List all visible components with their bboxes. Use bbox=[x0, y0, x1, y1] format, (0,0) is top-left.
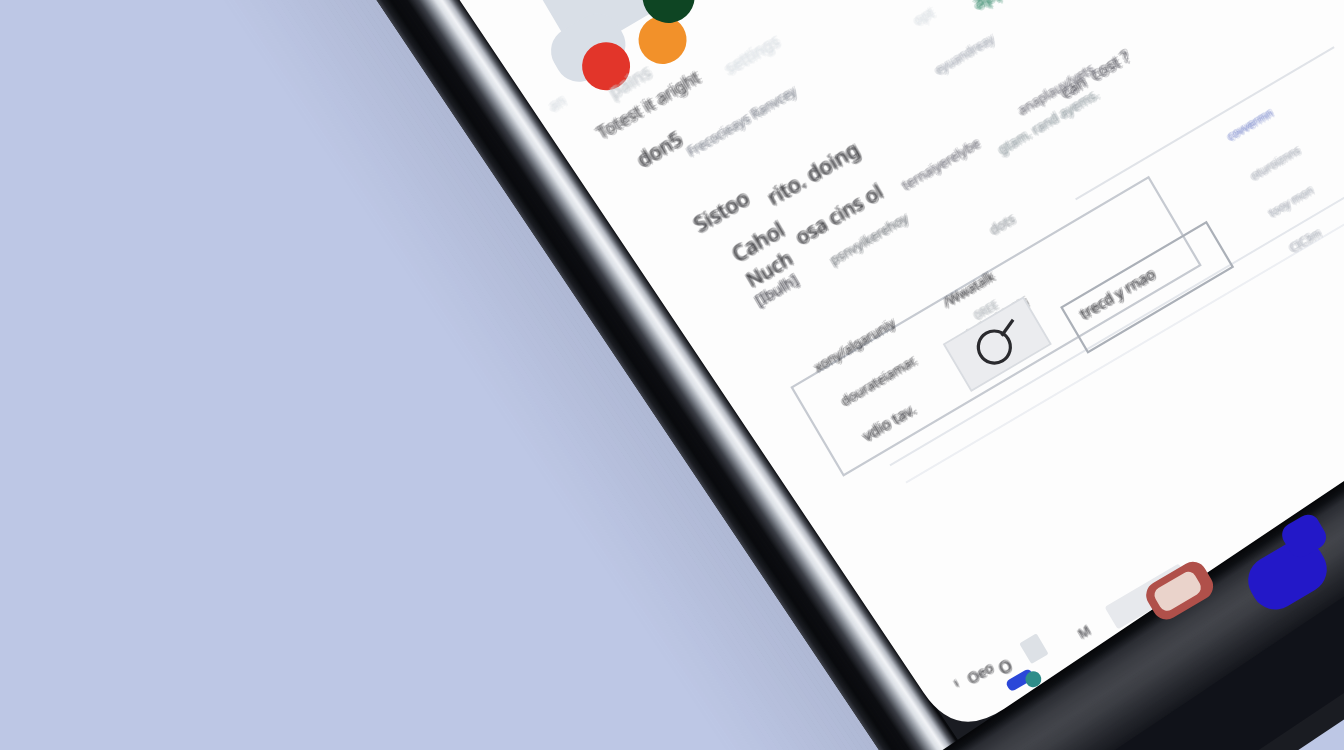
button[interactable]: Phone on desk showing an app screen bbox=[0, 0, 1344, 750]
